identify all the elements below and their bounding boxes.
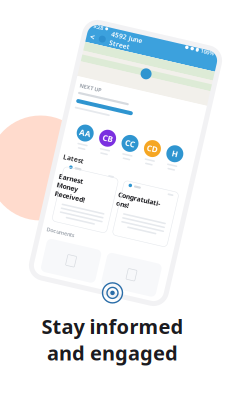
staticText: Earnest Money Received!	[63, 186, 94, 213]
staticText: CB	[97, 138, 107, 148]
staticText: CC	[120, 138, 130, 148]
staticText: Stay informed	[41, 313, 183, 339]
staticText: 4592 June Street	[82, 36, 114, 53]
staticText: 100%	[173, 33, 187, 40]
staticText: CD	[143, 138, 154, 148]
staticText: AA	[73, 138, 85, 148]
staticText: H	[168, 138, 174, 148]
staticText: NEXT UP	[63, 94, 85, 101]
staticText: Congratulations!	[125, 190, 168, 208]
staticText: Latest	[63, 166, 84, 175]
staticText: and engaged	[47, 339, 178, 366]
staticText: Monroeville, CA	[82, 54, 111, 59]
staticText: Documents	[63, 241, 92, 249]
